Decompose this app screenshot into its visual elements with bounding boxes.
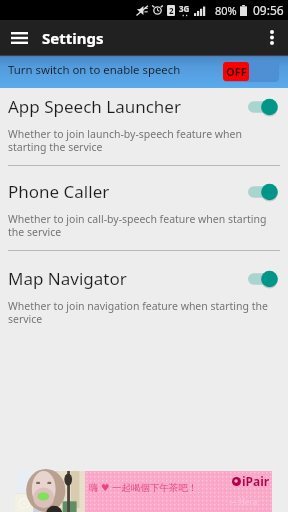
button[interactable]: Phone Caller: [0, 166, 288, 250]
staticText: Turn switch on to enable speech: [8, 62, 181, 78]
button[interactable]: Open navigation drawer: [0, 20, 38, 55]
staticText: 09:56: [253, 2, 284, 18]
staticText: 嗨 ♥ 一起喝個下午茶吧！: [89, 481, 198, 494]
staticText: Whether to join launch-by-speech feature…: [8, 127, 280, 154]
staticText: Phone Caller: [8, 180, 110, 203]
button[interactable]: Speech switch off: [223, 61, 279, 82]
staticText: 2: [169, 5, 174, 16]
staticText: Settings: [42, 28, 104, 48]
button[interactable]: Turn switch on to enable speech: [0, 55, 288, 88]
staticText: OFF: [226, 64, 247, 79]
staticText: iPair: [242, 473, 270, 489]
staticText: Map Navigator: [8, 267, 127, 290]
staticText: 3G: [179, 3, 190, 14]
staticText: 80%: [215, 3, 237, 18]
button[interactable]: Toggle setting: [248, 182, 280, 202]
staticText: Whether to join call-by-speech feature w…: [8, 212, 280, 239]
button[interactable]: Advertisement: [0, 471, 288, 512]
button[interactable]: App Speech Launcher: [0, 88, 288, 165]
button[interactable]: More options: [256, 20, 288, 55]
button[interactable]: Toggle setting: [248, 97, 280, 117]
button[interactable]: Toggle setting: [248, 269, 280, 289]
staticText: — Hera: [229, 496, 258, 507]
staticText: App Speech Launcher: [8, 95, 181, 118]
button[interactable]: Map Navigator: [0, 251, 288, 335]
staticText: Whether to join navigation feature when …: [8, 299, 280, 326]
